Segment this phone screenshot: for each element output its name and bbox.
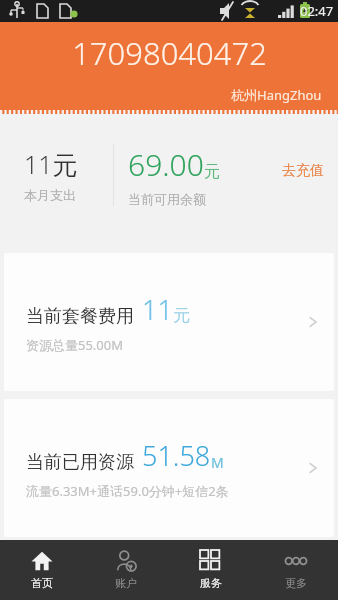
staticText: M — [211, 453, 224, 472]
staticText: 杭州HangZhou — [231, 86, 322, 104]
staticText: 11元 — [24, 147, 78, 181]
button[interactable]: 去充值 — [278, 158, 328, 184]
staticText: 当前套餐费用 — [26, 305, 134, 328]
staticText: 11 — [142, 291, 173, 328]
button[interactable]: 更多 — [253, 540, 338, 600]
button[interactable]: 账户 — [84, 540, 168, 600]
button[interactable]: 首页 — [0, 540, 84, 600]
staticText: 流量6.33M+通话59.0分钟+短信2条 — [26, 482, 229, 500]
button[interactable]: 服务 — [168, 540, 253, 600]
other: 查看详情 — [306, 315, 320, 329]
staticText: 服务 — [200, 576, 222, 590]
staticText: 元 — [204, 162, 220, 182]
staticText: 17098040472 — [72, 32, 267, 74]
button[interactable]: 当前已用资源 — [4, 399, 334, 537]
staticText: 元 — [173, 305, 190, 326]
other: 查看详情 — [306, 461, 320, 475]
staticText: 当前可用余额 — [128, 191, 206, 207]
staticText: 69.00 — [128, 144, 204, 185]
staticText: 首页 — [31, 576, 53, 590]
staticText: 账户 — [115, 576, 137, 590]
button[interactable]: 当前套餐费用 — [4, 253, 334, 391]
staticText: 本月支出 — [24, 187, 76, 203]
staticText: 51.58 — [142, 437, 211, 474]
staticText: 去充值 — [282, 162, 324, 180]
staticText: 资源总量55.00M — [26, 336, 124, 354]
staticText: 当前已用资源 — [26, 451, 134, 474]
staticText: 更多 — [285, 576, 307, 590]
staticText: 02:47 — [300, 2, 334, 20]
